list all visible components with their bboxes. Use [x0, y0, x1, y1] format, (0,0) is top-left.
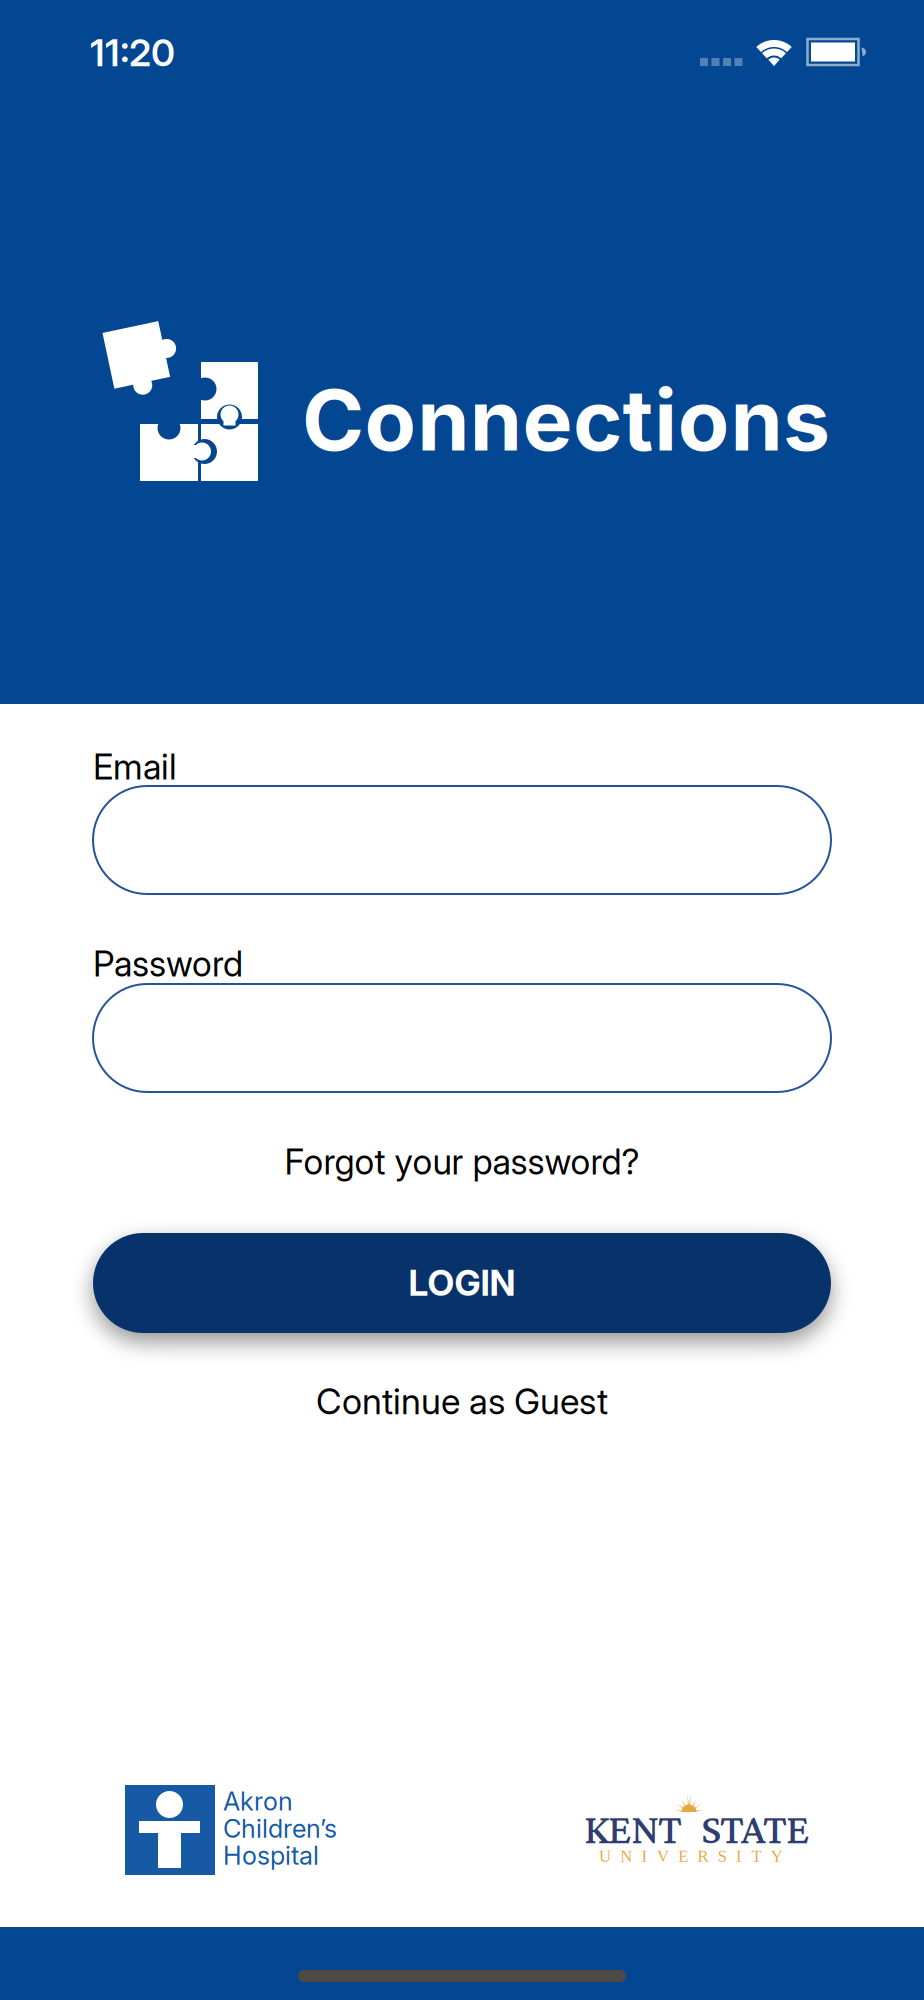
button[interactable]: [93, 984, 831, 1092]
staticText: Children’s: [223, 1813, 337, 1844]
staticText: 11:20: [90, 30, 175, 75]
staticText: Akron: [223, 1786, 293, 1817]
staticText: Email: [93, 746, 177, 788]
staticText: Password: [93, 943, 243, 985]
staticText: Forgot your password?: [284, 1141, 639, 1183]
staticText: KENT STATE: [584, 1805, 810, 1852]
staticText: UNIVERSITY: [599, 1847, 783, 1865]
button[interactable]: Continue as Guest: [316, 1380, 608, 1423]
button[interactable]: Forgot your password?: [284, 1141, 639, 1183]
staticText: Hospital: [223, 1840, 319, 1871]
staticText: LOGIN: [408, 1262, 515, 1304]
staticText: Connections: [302, 369, 830, 471]
button[interactable]: LOGIN: [93, 1233, 831, 1333]
staticText: Continue as Guest: [316, 1380, 608, 1423]
button[interactable]: [93, 786, 831, 894]
